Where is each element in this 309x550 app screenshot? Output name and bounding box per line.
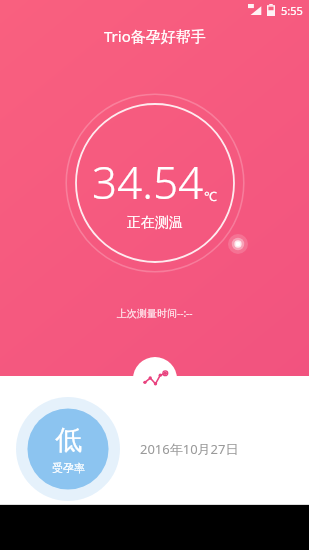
staticText: 上次测量时间--:--	[117, 306, 193, 320]
staticText: 5:55	[281, 3, 303, 18]
button[interactable]: 低	[0, 396, 309, 501]
staticText: 34.54	[92, 152, 204, 212]
button[interactable]: Temperature chart	[133, 357, 177, 401]
staticText: 正在测温	[127, 214, 183, 232]
staticText: ℃	[204, 187, 217, 205]
staticText: 2016年10月27日	[140, 440, 239, 458]
staticText: 低	[55, 423, 82, 457]
staticText: 受孕率	[52, 461, 85, 475]
staticText: Trio备孕好帮手	[104, 26, 206, 46]
